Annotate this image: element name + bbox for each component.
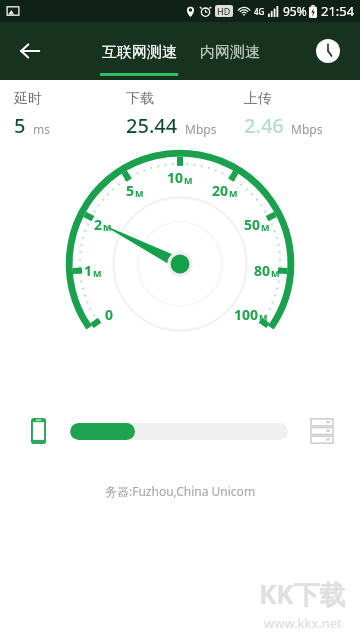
staticText: 0 (105, 305, 114, 324)
button[interactable]: 内网测速 (200, 22, 260, 80)
staticText: M (93, 267, 102, 279)
staticText: 95% (283, 3, 307, 19)
staticText: KK下载 (259, 576, 346, 612)
staticText: Mbps (291, 121, 323, 137)
staticText: M (271, 267, 280, 279)
button[interactable]: Device (18, 411, 58, 451)
staticText: M (259, 311, 268, 323)
button[interactable]: 互联网测速 (100, 22, 178, 80)
staticText: M (135, 187, 144, 199)
staticText: 延时 (14, 90, 42, 108)
staticText: www.kkx.net (264, 614, 342, 632)
staticText: 100 (234, 305, 259, 324)
staticText: 1 (84, 261, 93, 280)
button[interactable] (70, 423, 288, 440)
staticText: 5 (126, 181, 135, 200)
staticText: 2.46 (244, 112, 284, 139)
button[interactable]: Server (302, 411, 342, 451)
staticText: M (229, 187, 238, 199)
staticText: 21:54 (321, 2, 355, 20)
staticText: 内网测速 (200, 43, 260, 62)
staticText: 5 (14, 112, 26, 139)
staticText: M (261, 221, 270, 233)
staticText: 互联网测速 (102, 43, 177, 62)
button[interactable]: Back (8, 29, 52, 73)
staticText: 上传 (244, 90, 272, 108)
staticText: ms (33, 121, 50, 137)
staticText: 50 (244, 215, 261, 234)
staticText: 2 (94, 215, 103, 234)
staticText: 务器:Fuzhou,China Unicom (105, 483, 256, 499)
staticText: M (103, 221, 112, 233)
staticText: 下载 (126, 90, 154, 108)
staticText: 20 (212, 181, 229, 200)
staticText: 25.44 (126, 112, 178, 139)
staticText: HD (217, 5, 231, 17)
staticText: 80 (254, 261, 271, 280)
button[interactable]: History (308, 31, 348, 71)
staticText: M (184, 174, 193, 186)
staticText: 4G (254, 6, 265, 17)
staticText: Mbps (185, 121, 217, 137)
staticText: 10 (167, 168, 184, 187)
